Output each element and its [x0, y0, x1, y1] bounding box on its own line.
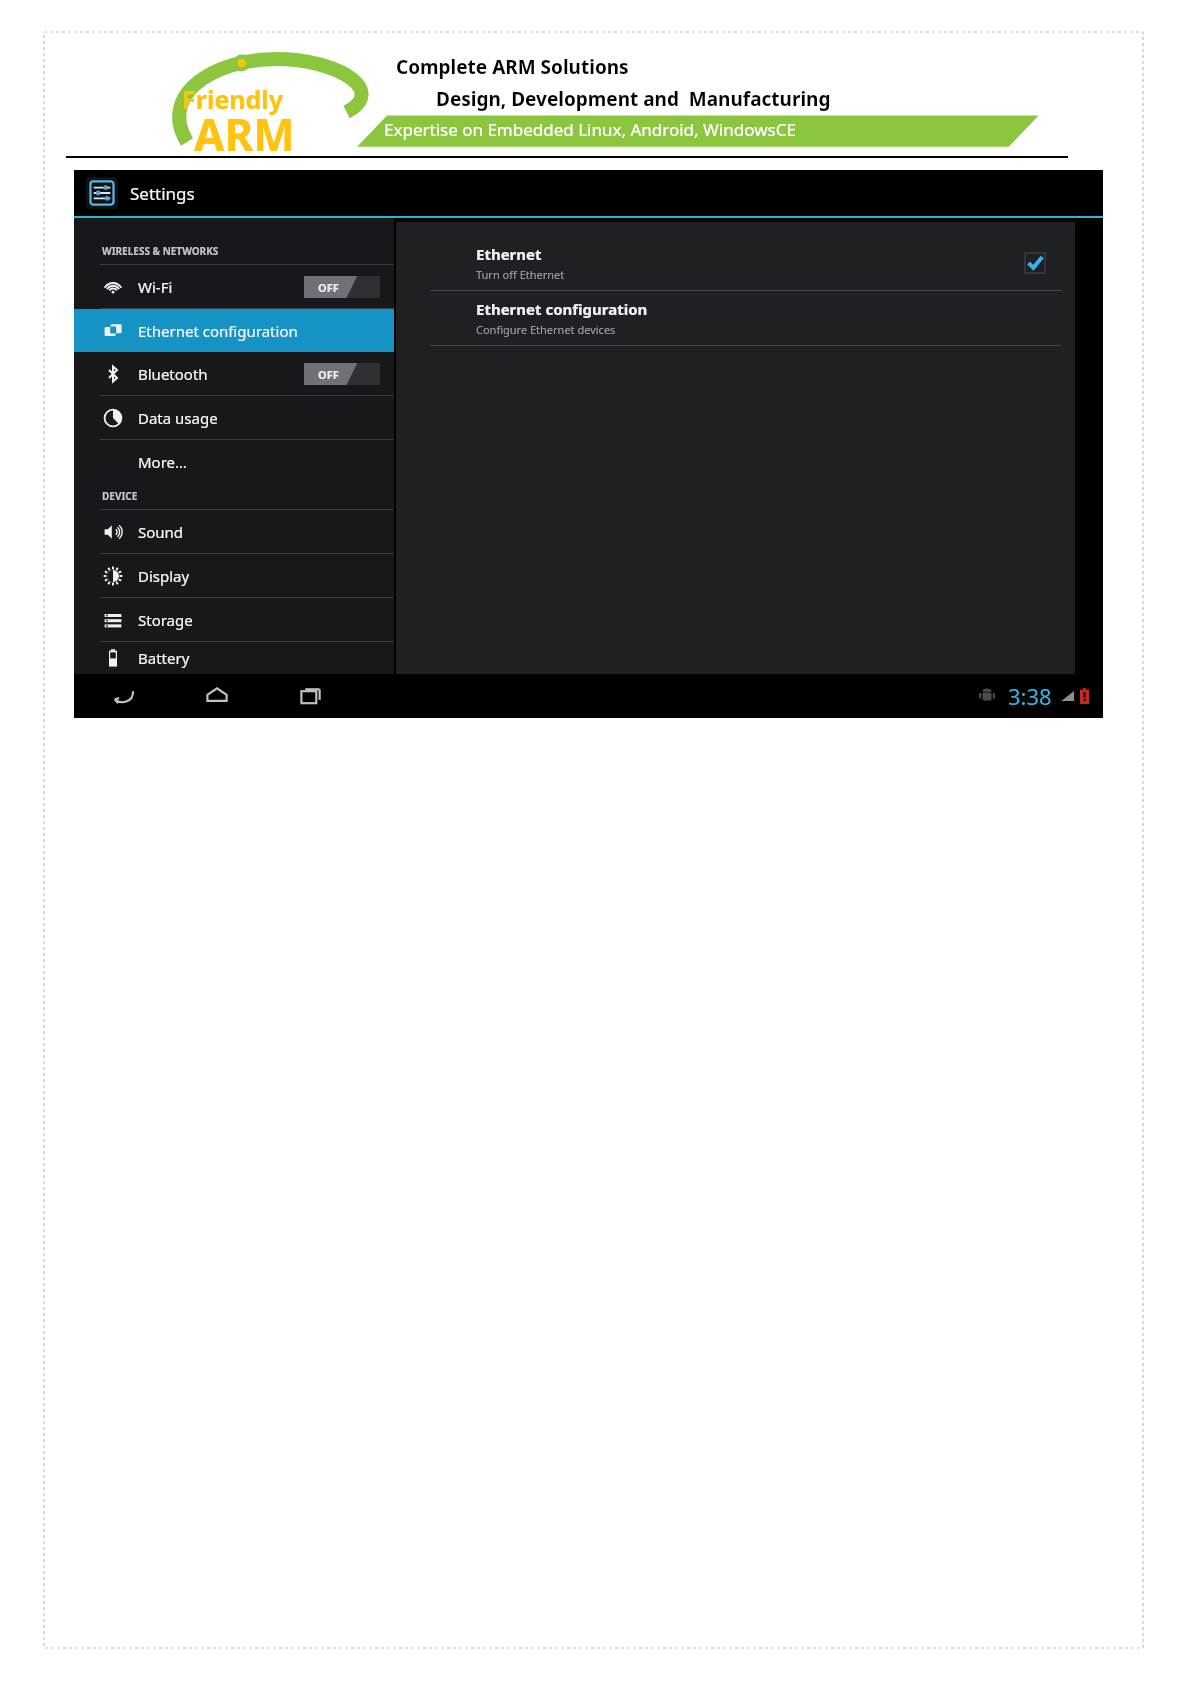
button[interactable]: Bluetooth [74, 352, 394, 395]
button[interactable]: Sound [74, 510, 394, 553]
button[interactable]: Storage [74, 598, 394, 641]
staticText: Ethernet configuration [138, 321, 298, 341]
button[interactable]: Home [194, 676, 240, 716]
staticText: Display [138, 566, 190, 586]
staticText: Data usage [138, 408, 218, 428]
staticText: Ethernet [476, 244, 542, 264]
staticText: Ethernet configuration [476, 299, 648, 319]
staticText: DEVICE [102, 489, 138, 503]
button[interactable]: Ethernet [396, 236, 1075, 290]
button[interactable]: Battery [74, 642, 394, 674]
staticText: Sound [138, 522, 184, 542]
button[interactable]: More… [74, 440, 394, 483]
button[interactable]: Wi-Fi [74, 265, 394, 308]
staticText: Settings [130, 182, 195, 205]
button[interactable]: Display [74, 554, 394, 597]
staticText: OFF [318, 367, 339, 382]
button[interactable]: Ethernet configuration [396, 291, 1075, 345]
staticText: Turn off Ethernet [476, 267, 565, 282]
staticText: Storage [138, 610, 193, 630]
staticText: 3:38 [1008, 681, 1052, 711]
staticText: More… [138, 452, 187, 472]
button[interactable]: Ethernet enabled [1025, 253, 1045, 273]
staticText: OFF [318, 280, 339, 295]
staticText: Bluetooth [138, 364, 208, 384]
staticText: Complete ARM Solutions [396, 54, 629, 80]
staticText: Expertise on Embedded Linux, Android, Wi… [384, 118, 796, 141]
staticText: Friendly [182, 82, 284, 116]
staticText: Design, Development and Manufacturing [436, 86, 831, 112]
button[interactable]: Ethernet configuration [74, 309, 394, 352]
staticText: Wi-Fi [138, 277, 173, 297]
staticText: ARM [194, 104, 295, 158]
staticText: Battery [138, 648, 190, 668]
button[interactable]: Data usage [74, 396, 394, 439]
staticText: Configure Ethernet devices [476, 322, 616, 337]
staticText: WIRELESS & NETWORKS [102, 244, 219, 258]
button[interactable]: Back [100, 676, 146, 716]
button[interactable]: Recent apps [288, 676, 334, 716]
